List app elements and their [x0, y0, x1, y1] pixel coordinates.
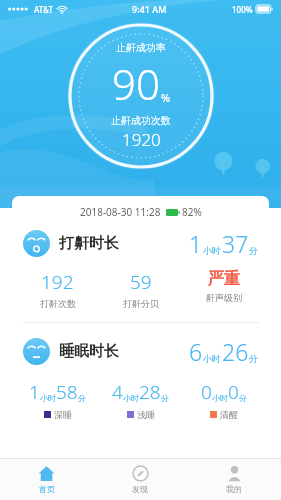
staticText: 止鼾成功次数	[111, 114, 171, 127]
staticText: %	[161, 90, 171, 105]
staticText: 100%	[232, 4, 253, 15]
staticText: 鼾声级别	[206, 292, 242, 303]
staticText: 分	[161, 393, 169, 403]
staticText: 打鼾时长	[59, 234, 119, 253]
staticText: 1	[29, 379, 40, 405]
button[interactable]: 睡眠时长	[23, 336, 258, 367]
staticText: 小时	[123, 393, 139, 403]
staticText: 分	[249, 353, 258, 364]
staticText: 睡眠时长	[59, 342, 119, 361]
staticText: 打鼾分贝	[123, 298, 159, 309]
staticText: 打鼾次数	[40, 298, 76, 309]
staticText: 26	[222, 336, 249, 367]
other: 我的	[226, 465, 243, 482]
staticText: 分	[78, 393, 86, 403]
staticText: 小时	[40, 393, 56, 403]
button[interactable]: 严重	[182, 269, 265, 303]
staticText: 小时	[203, 353, 221, 364]
button[interactable]: 59	[99, 269, 182, 309]
staticText: 浅睡	[137, 409, 155, 420]
other: 发现	[132, 465, 149, 482]
staticText: 58	[56, 379, 78, 405]
staticText: 1920	[122, 128, 161, 151]
staticText: 我的	[226, 484, 242, 494]
staticText: 9:41 AM	[132, 3, 167, 15]
staticText: 清醒	[220, 409, 238, 420]
staticText: 82%	[182, 205, 202, 219]
button[interactable]: 0	[182, 379, 265, 420]
other: 首页	[38, 465, 55, 482]
staticText: 严重	[208, 269, 240, 289]
staticText: 59	[130, 269, 152, 295]
button[interactable]: 发现	[93, 459, 187, 500]
staticText: 28	[139, 379, 161, 405]
staticText: 分	[239, 393, 247, 403]
staticText: 90	[112, 55, 160, 112]
staticText: 4	[112, 379, 123, 405]
button[interactable]: 4	[99, 379, 182, 420]
staticText: 发现	[132, 484, 148, 494]
staticText: 0	[228, 379, 239, 405]
button[interactable]: 打鼾时长	[23, 228, 258, 259]
staticText: 192	[41, 269, 74, 295]
staticText: 小时	[212, 393, 228, 403]
staticText: 1	[189, 228, 203, 259]
staticText: 深睡	[54, 409, 72, 420]
staticText: 2018-08-30 11:28	[80, 205, 161, 219]
button[interactable]: 首页	[0, 459, 93, 500]
staticText: AT&T	[34, 4, 53, 15]
staticText: 小时	[203, 245, 221, 256]
staticText: 首页	[39, 484, 55, 494]
staticText: 0	[201, 379, 212, 405]
button[interactable]: 192	[16, 269, 99, 309]
staticText: 37	[222, 228, 249, 259]
staticText: 分	[249, 245, 258, 256]
staticText: 6	[189, 336, 203, 367]
button[interactable]: 1	[16, 379, 99, 420]
staticText: 止鼾成功率	[116, 41, 166, 54]
button[interactable]: 我的	[187, 459, 281, 500]
